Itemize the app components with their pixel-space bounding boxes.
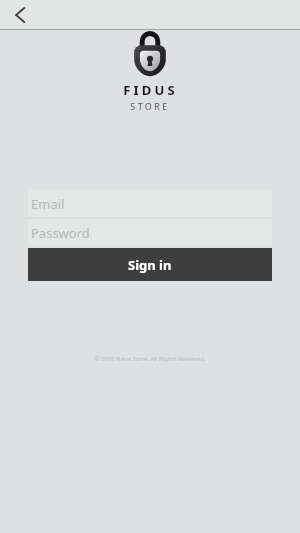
button[interactable]: Back <box>0 0 40 29</box>
staticText: Sign in <box>128 256 172 274</box>
staticText: © 2016 Fidus Store. All Rights Reserved. <box>94 355 206 363</box>
staticText: FIDUS <box>123 81 178 99</box>
staticText: Email <box>31 195 65 213</box>
staticText: Password <box>31 224 90 242</box>
button[interactable]: Email <box>28 190 272 217</box>
button[interactable]: Password <box>28 219 272 246</box>
button[interactable]: Sign in <box>28 248 272 281</box>
staticText: STORE <box>130 100 170 112</box>
